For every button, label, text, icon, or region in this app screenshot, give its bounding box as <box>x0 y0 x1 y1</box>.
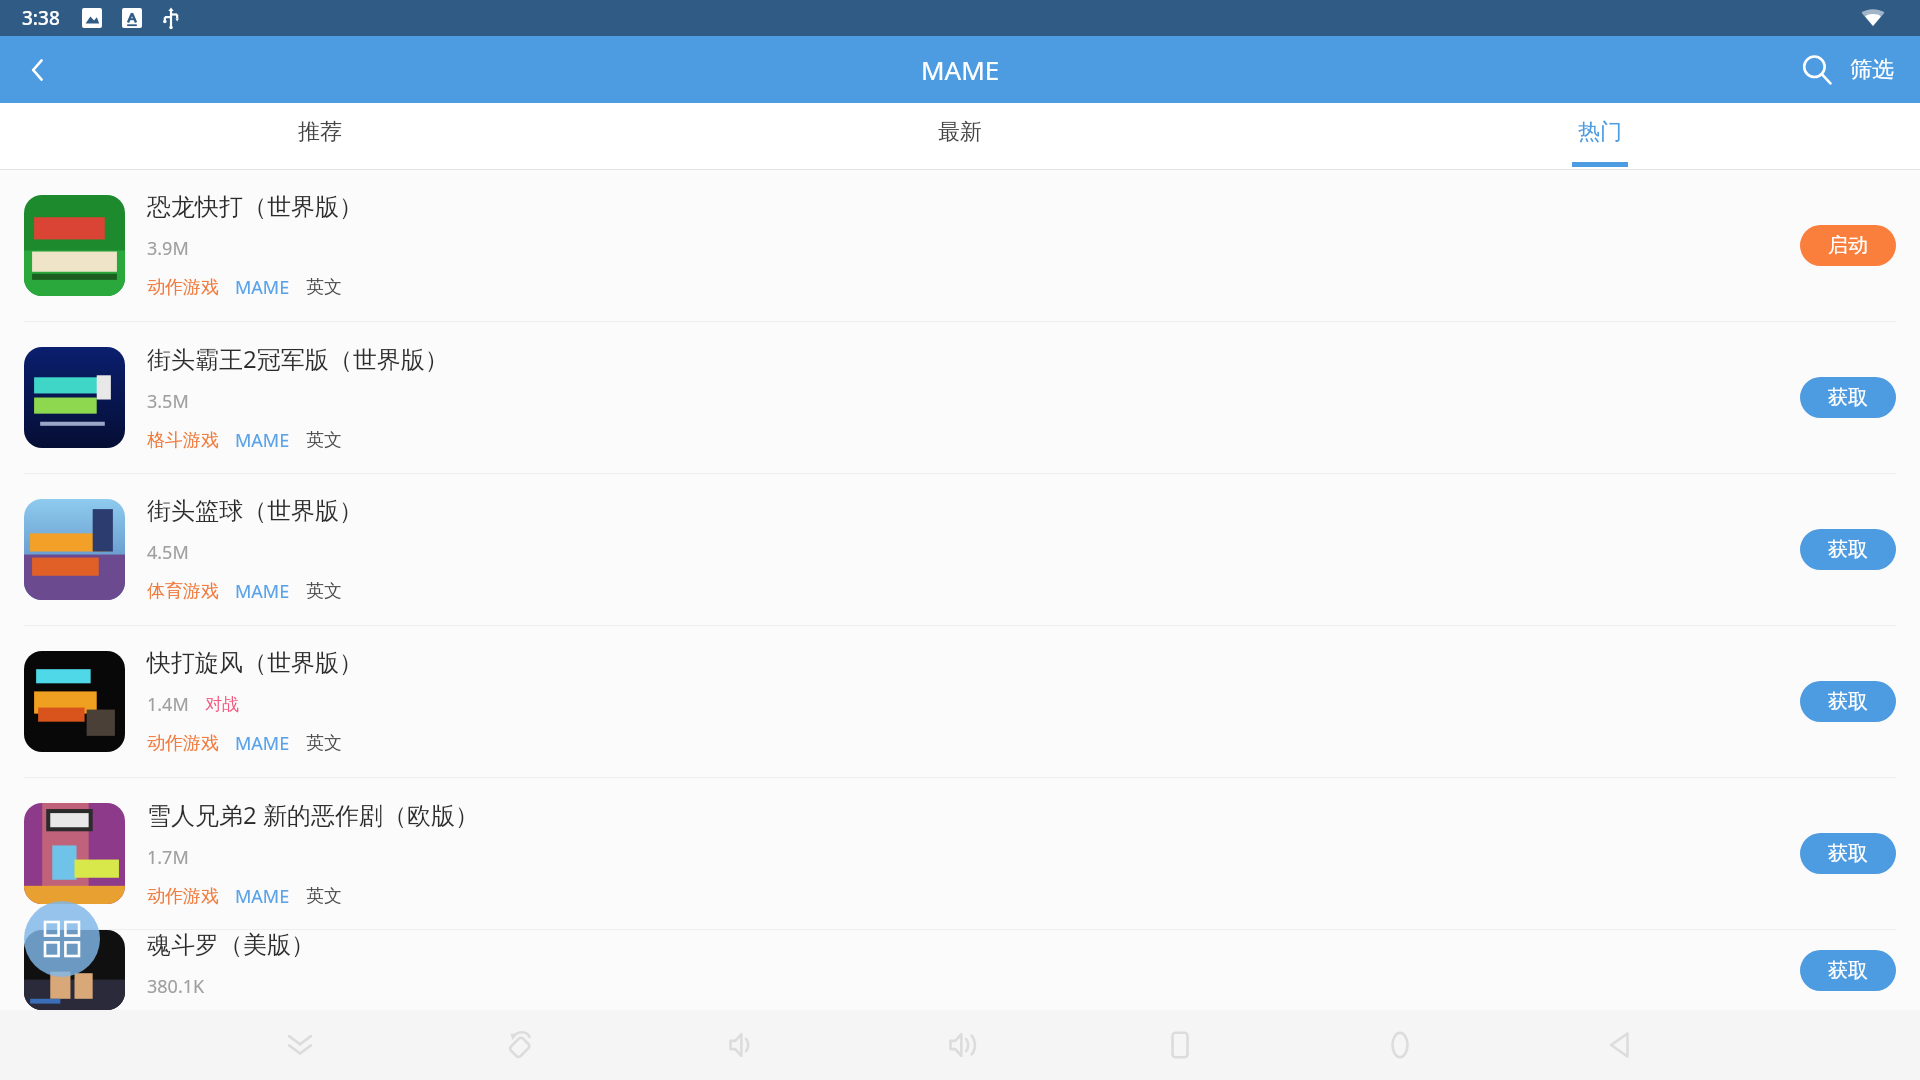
button[interactable]: 获取 <box>1800 529 1896 570</box>
staticText: 动作游戏 <box>147 732 219 755</box>
staticText: 4.5M <box>147 540 189 565</box>
staticText: 3.9M <box>147 236 189 261</box>
staticText: 英文 <box>306 732 342 755</box>
button[interactable]: Back <box>1589 1014 1651 1076</box>
button[interactable]: Rotate screen <box>489 1014 551 1076</box>
button[interactable]: Volume down <box>709 1014 771 1076</box>
button[interactable]: 魂斗罗（美版） <box>0 930 1920 1010</box>
button[interactable]: Home <box>1369 1014 1431 1076</box>
staticText: 启动 <box>1828 233 1868 258</box>
button[interactable]: 最新 <box>640 103 1280 170</box>
button[interactable]: 获取 <box>1800 833 1896 874</box>
staticText: MAME <box>235 884 290 909</box>
staticText: 最新 <box>938 118 982 146</box>
button[interactable]: Search <box>1784 37 1850 103</box>
button[interactable]: 街头篮球（世界版） <box>0 474 1920 625</box>
staticText: 3:38 <box>22 5 60 31</box>
staticText: MAME <box>235 428 290 453</box>
button[interactable]: 筛选 <box>1850 56 1894 84</box>
staticText: 热门 <box>1578 118 1622 146</box>
staticText: 获取 <box>1828 537 1868 562</box>
staticText: 恐龙快打（世界版） <box>147 192 363 222</box>
staticText: MAME <box>235 275 290 300</box>
button[interactable]: Recent apps <box>1149 1014 1211 1076</box>
staticText: 英文 <box>306 429 342 452</box>
button[interactable]: 获取 <box>1800 681 1896 722</box>
staticText: 街头霸王2冠军版（世界版） <box>147 342 449 375</box>
staticText: 3.5M <box>147 389 189 414</box>
staticText: 魂斗罗（美版） <box>147 930 315 960</box>
staticText: 获取 <box>1828 958 1868 983</box>
staticText: 英文 <box>306 885 342 908</box>
button[interactable]: 启动 <box>1800 225 1896 266</box>
button[interactable]: Volume up <box>929 1014 991 1076</box>
staticText: 获取 <box>1828 689 1868 714</box>
staticText: MAME <box>235 731 290 756</box>
staticText: 动作游戏 <box>147 885 219 908</box>
button[interactable]: Back <box>0 36 76 103</box>
staticText: 对战 <box>205 694 239 715</box>
staticText: 英文 <box>306 580 342 603</box>
button[interactable]: Grid menu <box>24 901 100 977</box>
button[interactable]: 快打旋风（世界版） <box>0 626 1920 777</box>
staticText: 1.4M <box>147 692 189 717</box>
button[interactable]: Collapse <box>269 1014 331 1076</box>
staticText: MAME <box>921 52 1000 87</box>
button[interactable]: 雪人兄弟2 新的恶作剧（欧版） <box>0 778 1920 929</box>
button[interactable]: 获取 <box>1800 950 1896 991</box>
staticText: MAME <box>235 579 290 604</box>
button[interactable]: 热门 <box>1280 103 1920 170</box>
staticText: 1.7M <box>147 845 189 870</box>
button[interactable]: 街头霸王2冠军版（世界版） <box>0 322 1920 473</box>
staticText: 380.1K <box>147 974 205 999</box>
staticText: 推荐 <box>298 118 342 146</box>
button[interactable]: 推荐 <box>0 103 640 170</box>
staticText: 获取 <box>1828 385 1868 410</box>
staticText: 格斗游戏 <box>147 429 219 452</box>
button[interactable]: 获取 <box>1800 377 1896 418</box>
staticText: 街头篮球（世界版） <box>147 496 363 526</box>
staticText: 雪人兄弟2 新的恶作剧（欧版） <box>147 798 479 831</box>
button[interactable]: 恐龙快打（世界版） <box>0 170 1920 321</box>
staticText: 英文 <box>306 276 342 299</box>
staticText: 快打旋风（世界版） <box>147 648 363 678</box>
staticText: 体育游戏 <box>147 580 219 603</box>
staticText: 筛选 <box>1850 56 1894 84</box>
staticText: 动作游戏 <box>147 276 219 299</box>
staticText: 获取 <box>1828 841 1868 866</box>
